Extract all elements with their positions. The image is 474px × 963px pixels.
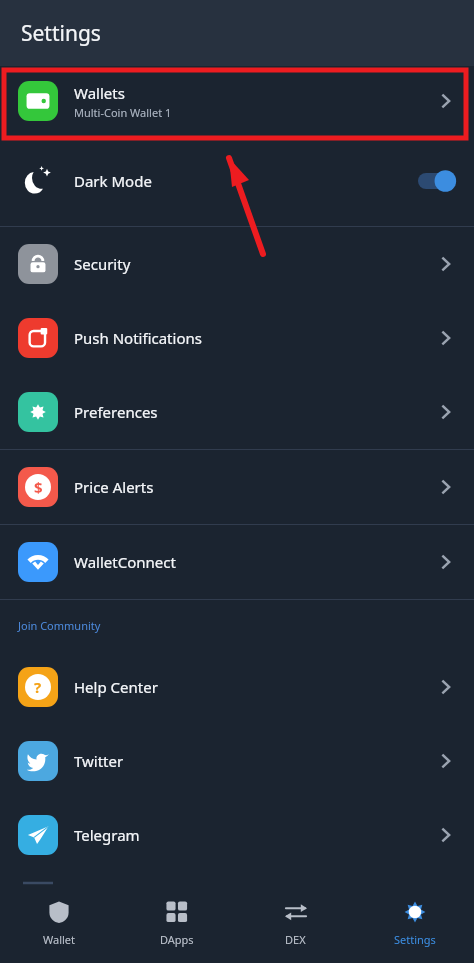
staticText: DApps	[160, 932, 194, 947]
button[interactable]: $	[0, 450, 474, 524]
staticText: Multi-Coin Wallet 1	[74, 105, 172, 120]
staticText: Telegram	[74, 825, 140, 845]
staticText: WalletConnect	[74, 552, 176, 572]
button[interactable]: Security	[0, 227, 474, 301]
button[interactable]: Dark Mode	[0, 136, 474, 226]
staticText: Wallet	[43, 932, 76, 947]
staticText: Twitter	[74, 751, 124, 771]
button[interactable]: Preferences	[0, 375, 474, 449]
staticText: Help Center	[74, 677, 158, 697]
button[interactable]: Push Notifications	[0, 301, 474, 375]
button[interactable]: Wallet	[0, 882, 118, 963]
staticText: Dark Mode	[74, 171, 152, 191]
button[interactable]: WalletConnect	[0, 525, 474, 599]
staticText: Wallets	[74, 83, 125, 103]
staticText: Preferences	[74, 402, 158, 422]
button[interactable]: DEX	[236, 882, 355, 963]
staticText: $	[34, 477, 43, 497]
staticText: Settings	[394, 932, 436, 947]
staticText: Settings	[21, 19, 101, 48]
button[interactable]: Settings	[355, 882, 474, 963]
staticText: ?	[34, 677, 42, 697]
staticText: Security	[74, 254, 131, 274]
staticText: Push Notifications	[74, 328, 202, 348]
button[interactable]	[418, 171, 456, 191]
staticText: DEX	[285, 932, 306, 947]
button[interactable]: Wallets	[0, 66, 474, 136]
button[interactable]: ?	[0, 650, 474, 724]
button[interactable]: Twitter	[0, 724, 474, 798]
staticText: Join Community	[18, 618, 101, 633]
button[interactable]: Telegram	[0, 798, 474, 872]
staticText: Price Alerts	[74, 477, 154, 497]
button[interactable]: DApps	[118, 882, 236, 963]
